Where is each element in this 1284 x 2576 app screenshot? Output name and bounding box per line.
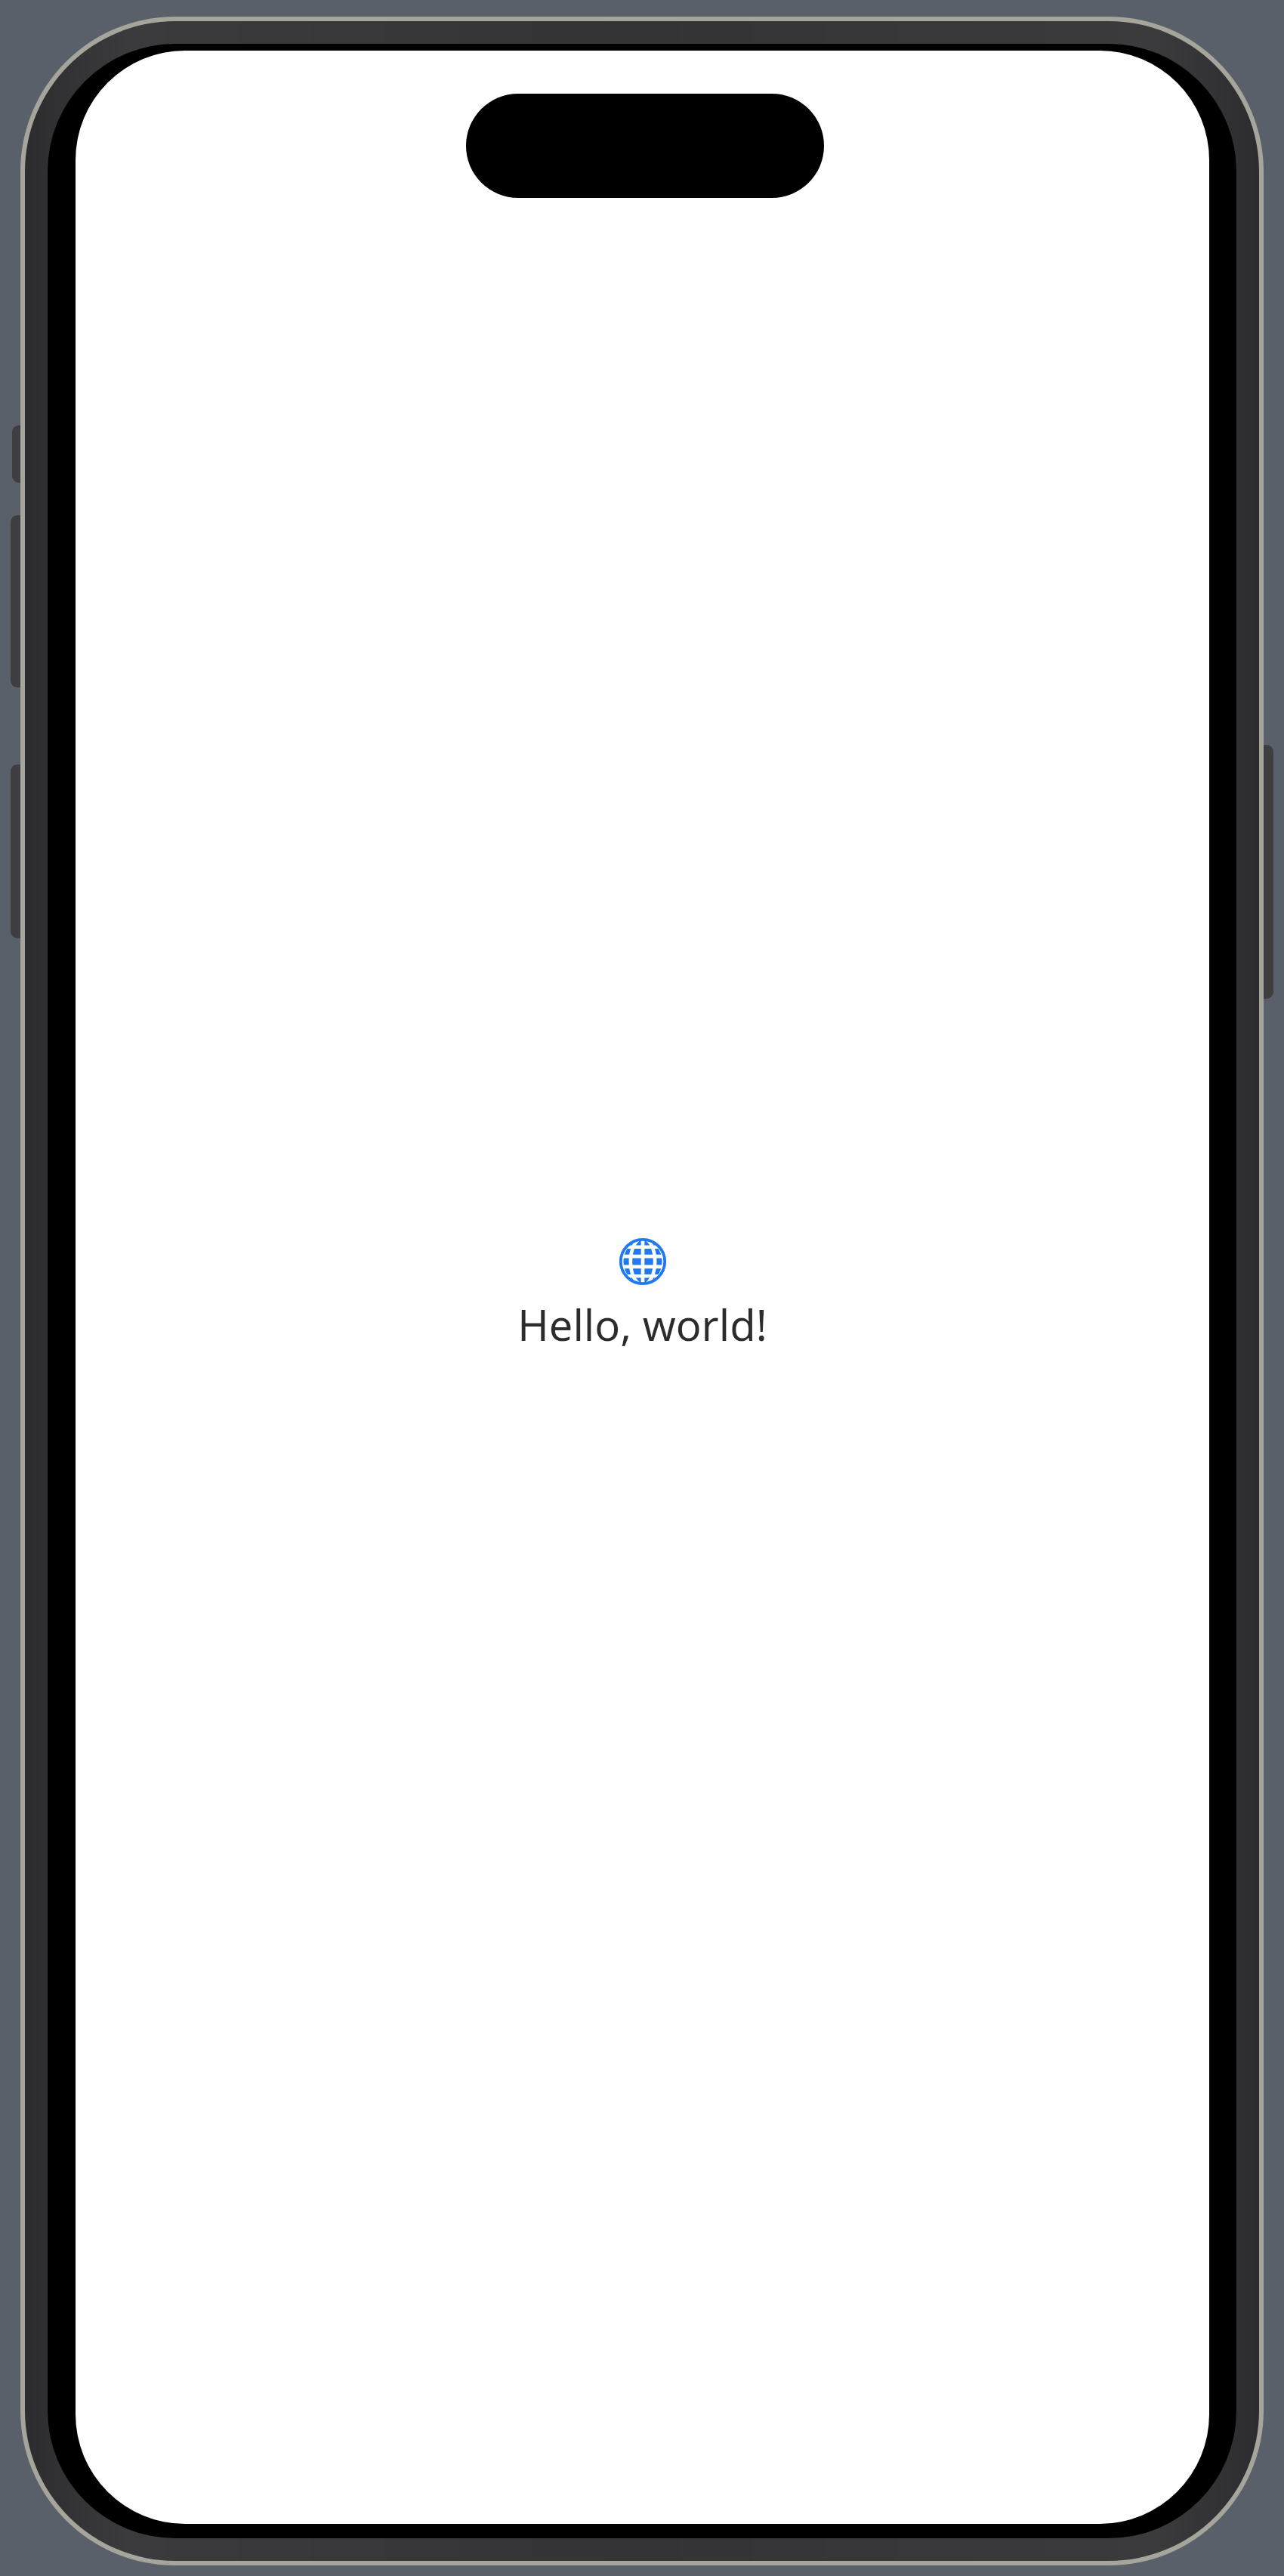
other: Globe — [619, 1238, 666, 1285]
button[interactable]: Globe — [517, 1238, 767, 1353]
staticText: Hello, world! — [517, 1296, 767, 1353]
